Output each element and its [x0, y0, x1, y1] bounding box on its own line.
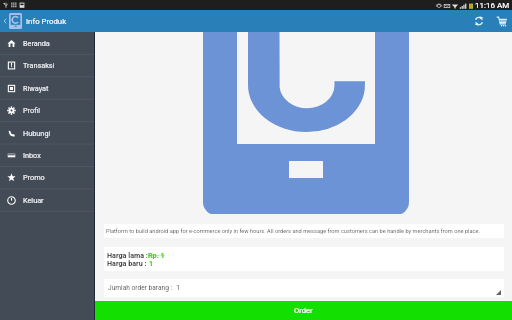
staticText: Hubungi: [23, 129, 51, 138]
staticText: Order: [294, 306, 313, 315]
staticText: Beranda: [23, 39, 50, 48]
button[interactable]: Order: [95, 301, 512, 320]
staticText: Keluar: [23, 196, 44, 205]
staticText: 1: [173, 284, 180, 292]
staticText: Profil: [23, 106, 40, 115]
button[interactable]: Inbox: [0, 144, 94, 166]
staticText: Info Produk: [26, 17, 67, 26]
button[interactable]: Refresh: [468, 10, 490, 32]
staticText: 11:16 AM: [475, 1, 510, 10]
staticText: Rp. 1: [148, 251, 165, 259]
staticText: Promo: [23, 173, 45, 182]
button[interactable]: Hubungi: [0, 122, 94, 144]
button[interactable]: Jumlah order barang :: [104, 279, 504, 297]
staticText: 1: [149, 259, 154, 267]
button[interactable]: Keluar: [0, 189, 94, 211]
staticText: Inbox: [23, 151, 41, 160]
staticText: Harga baru :: [107, 259, 149, 267]
staticText: Jumlah order barang :: [108, 284, 173, 292]
button[interactable]: Cart: [490, 10, 512, 32]
button[interactable]: Harga lama :: [104, 247, 504, 271]
button[interactable]: Riwayat: [0, 77, 94, 99]
button[interactable]: Transaksi: [0, 54, 94, 76]
button[interactable]: Back: [0, 10, 9, 32]
staticText: Harga lama :: [107, 251, 148, 259]
button[interactable]: Platform to build android app for e-comm…: [104, 224, 504, 238]
staticText: Riwayat: [23, 84, 49, 93]
staticText: Transaksi: [23, 61, 55, 70]
button[interactable]: Promo: [0, 166, 94, 188]
button[interactable]: Beranda: [0, 32, 94, 54]
button[interactable]: Profil: [0, 99, 94, 121]
staticText: Platform to build android app for e-comm…: [106, 228, 480, 235]
